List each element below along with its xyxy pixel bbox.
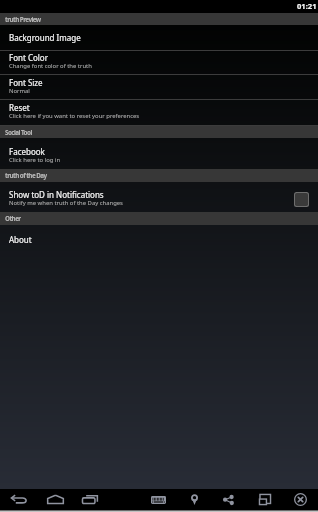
button[interactable]: Font Color [0, 51, 318, 74]
button[interactable]: Facebook [0, 138, 318, 169]
button[interactable]: About [0, 225, 318, 256]
staticText: Reset [9, 102, 30, 113]
button[interactable]: Keyboard [147, 489, 169, 510]
staticText: Facebook [9, 146, 45, 157]
button[interactable]: Recent apps [79, 489, 101, 510]
button[interactable]: Share [217, 489, 239, 510]
button[interactable]: Background Image [0, 25, 318, 50]
staticText: truth of the Day [5, 171, 47, 180]
staticText: About [9, 234, 32, 245]
staticText: Normal [9, 87, 30, 95]
button[interactable]: Back [8, 489, 30, 510]
staticText: Other [5, 214, 21, 223]
staticText: Font Color [9, 52, 49, 63]
button[interactable]: Font Size [0, 75, 318, 99]
button[interactable]: Screenshot [254, 489, 276, 510]
staticText: Change font color of the truth [9, 62, 92, 70]
staticText: Show toD in Notifications [9, 189, 104, 200]
button[interactable]: Reset [0, 100, 318, 125]
staticText: Social Tool [5, 128, 32, 137]
staticText: Notify me when truth of the Day changes [9, 199, 123, 207]
staticText: Click here if you want to reset your pre… [9, 112, 140, 120]
staticText: Font Size [9, 77, 43, 88]
staticText: truth Preview [5, 15, 41, 24]
staticText: 01:21 [297, 1, 317, 11]
button[interactable]: Close [289, 489, 311, 510]
button[interactable]: Show toD in Notifications [0, 182, 318, 212]
staticText: Background Image [9, 32, 81, 43]
button[interactable]: Location [183, 489, 205, 510]
staticText: Click here to log in [9, 156, 61, 164]
button[interactable]: Home [44, 489, 66, 510]
